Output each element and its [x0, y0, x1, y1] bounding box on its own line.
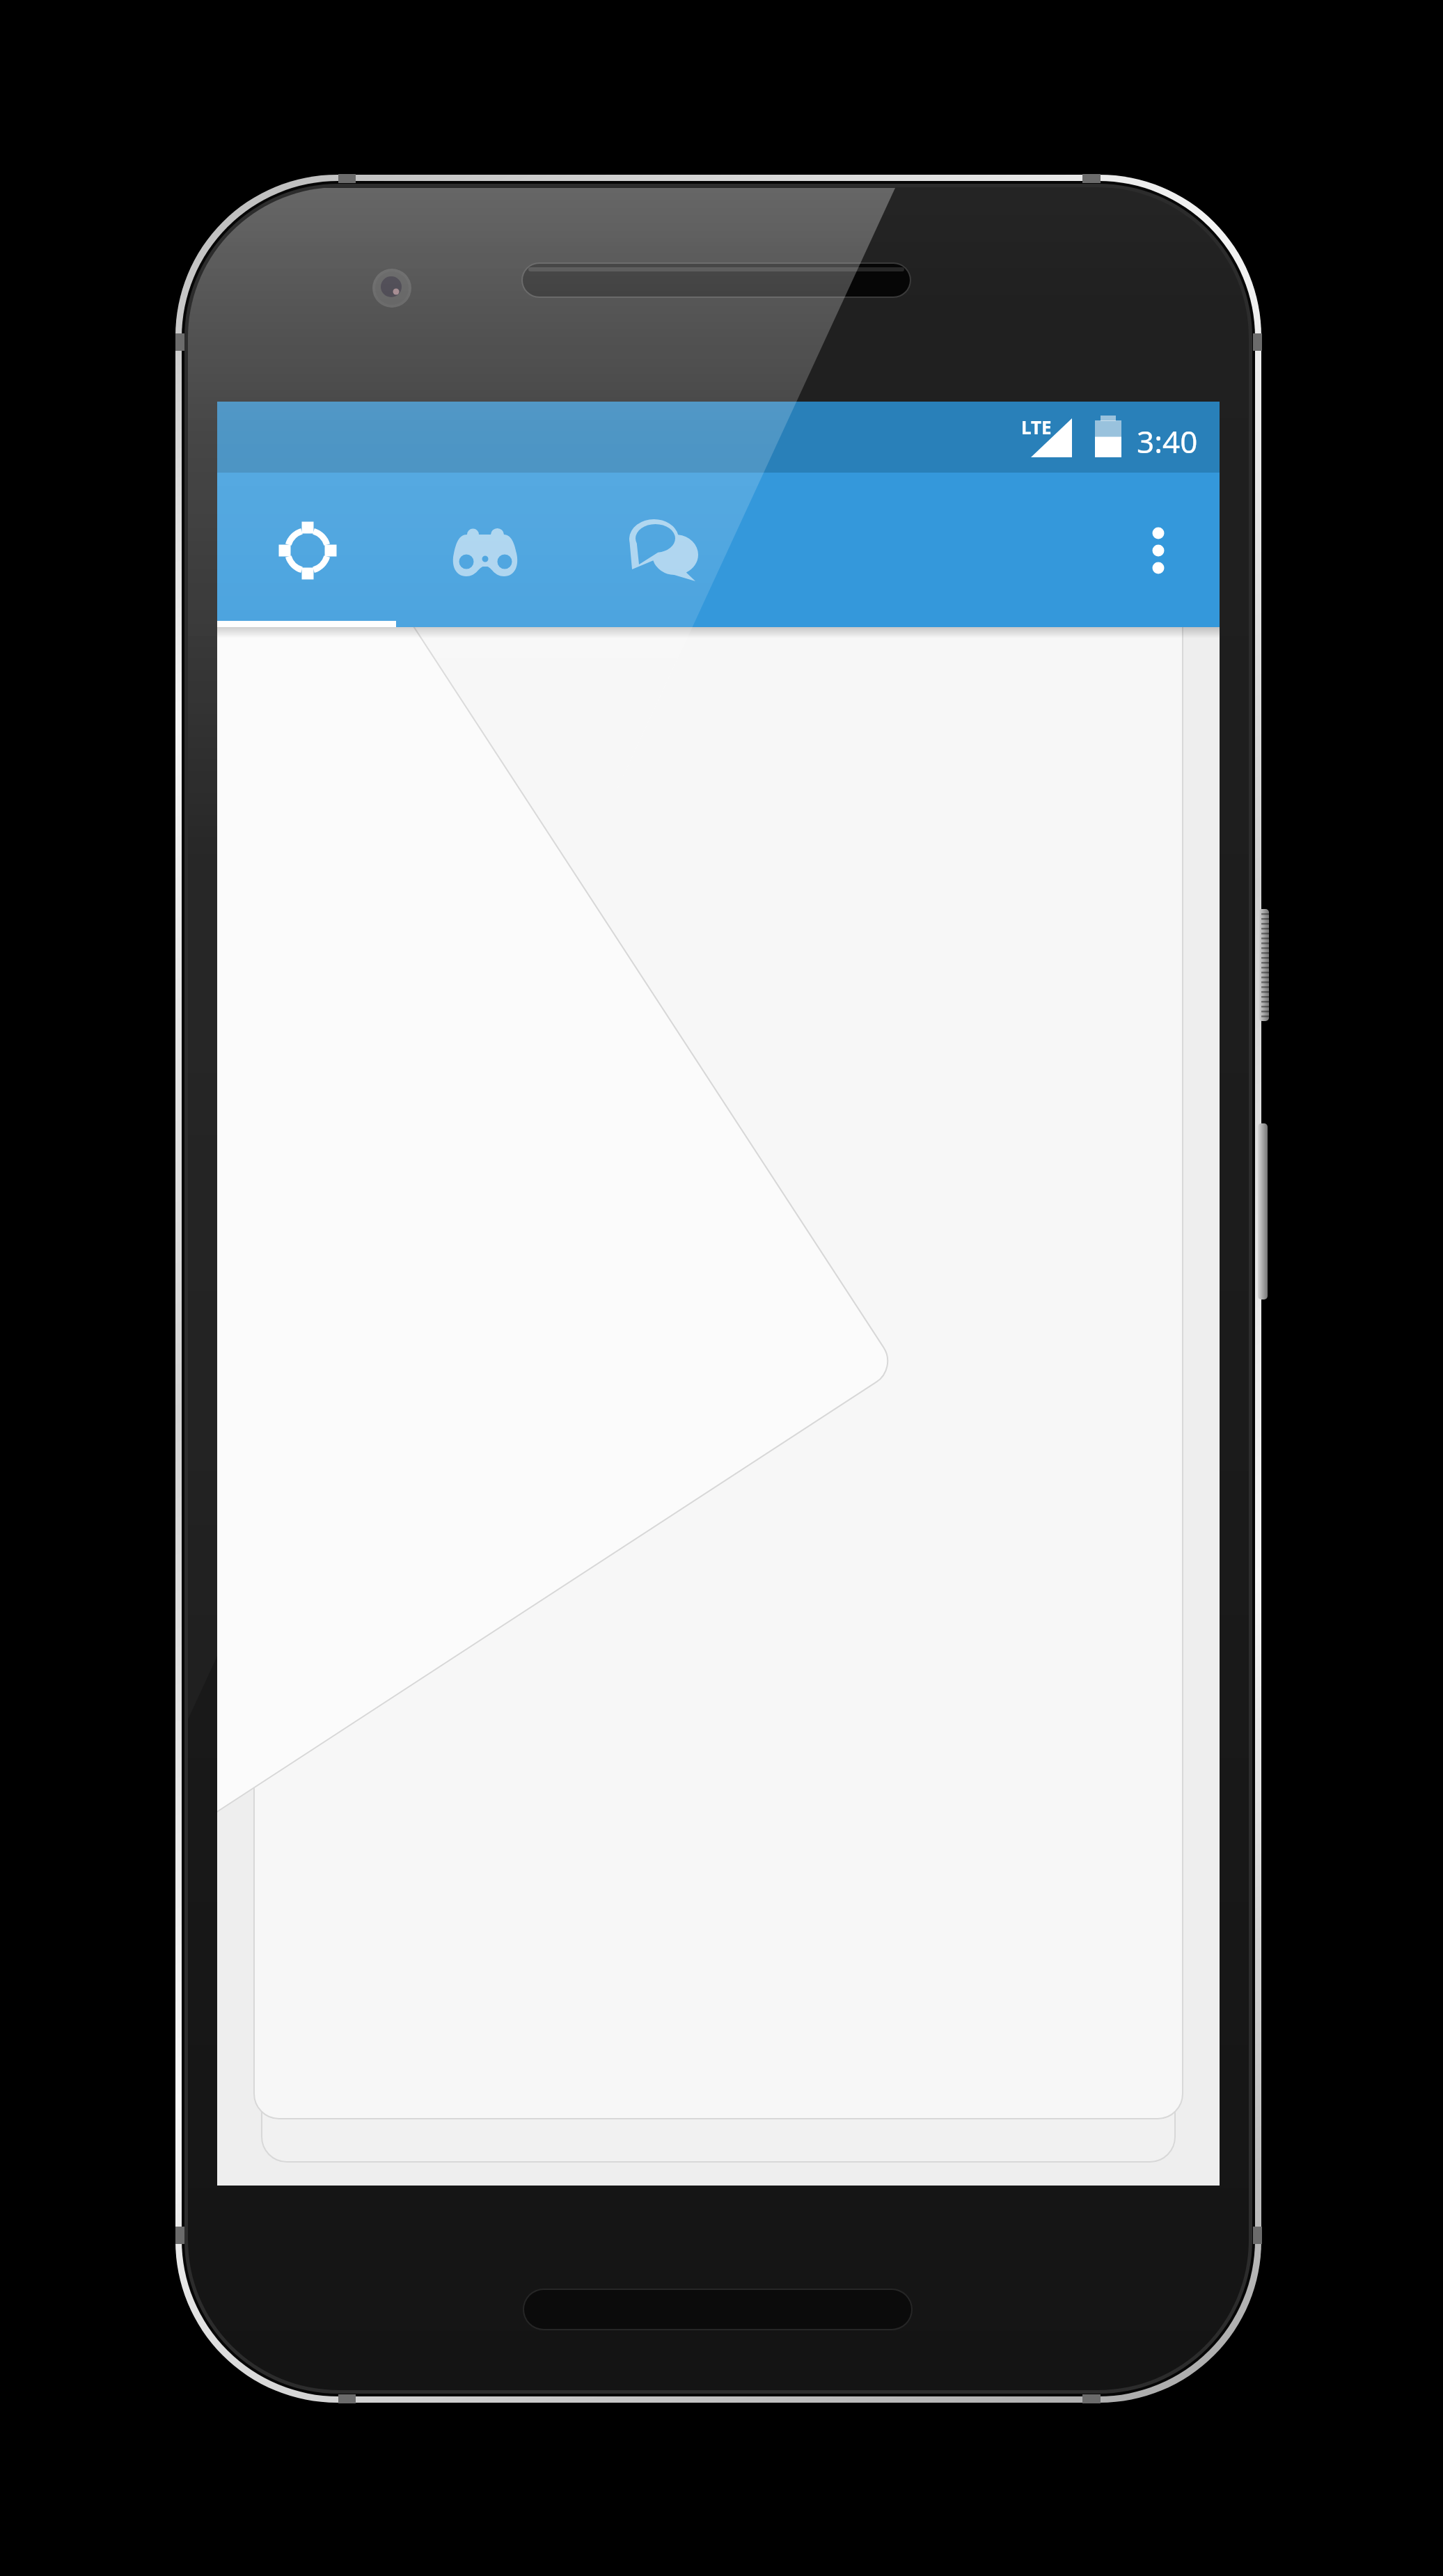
button[interactable]: Chats — [574, 473, 752, 620]
button[interactable]: Games — [395, 473, 574, 620]
button[interactable]: Discover — [217, 473, 395, 620]
staticText: LTE — [1021, 415, 1052, 439]
staticText: 3:40 — [1137, 420, 1198, 462]
button[interactable]: More options — [1096, 477, 1207, 616]
